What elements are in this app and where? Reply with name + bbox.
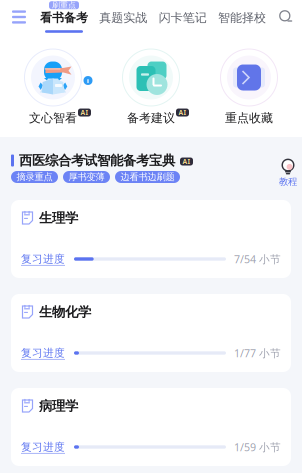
button[interactable]: 病理学 xyxy=(11,388,291,466)
staticText: 复习进度 xyxy=(21,346,65,359)
button[interactable]: Menu xyxy=(6,4,32,30)
staticText: 边看书边刷题 xyxy=(120,171,174,183)
staticText: 教程 xyxy=(279,176,297,187)
staticText: 复习进度 xyxy=(21,252,65,265)
staticText: 看书备考 xyxy=(40,10,88,25)
staticText: 生物化学 xyxy=(39,304,91,320)
staticText: 生理学 xyxy=(39,210,78,226)
button[interactable]: 智能择校 xyxy=(218,1,266,33)
staticText: 真题实战 xyxy=(99,10,147,25)
button[interactable]: Search xyxy=(276,7,296,27)
staticText: 文心智看 xyxy=(29,111,77,125)
staticText: 1/59 小节 xyxy=(234,440,281,454)
staticText: 厚书变薄 xyxy=(68,171,104,183)
staticText: 复习进度 xyxy=(21,440,65,453)
button[interactable]: 生理学 xyxy=(11,200,291,278)
staticText: 闪卡笔记 xyxy=(159,10,207,25)
staticText: 7/54 小节 xyxy=(234,252,281,266)
button[interactable]: 重点收藏 xyxy=(218,46,280,124)
staticText: 西医综合考试智能备考宝典 xyxy=(19,152,175,169)
staticText: 备考建议 xyxy=(127,111,175,125)
staticText: 刷重点 xyxy=(52,0,76,10)
staticText: AI xyxy=(80,108,88,117)
button[interactable]: 刷重点 xyxy=(40,1,88,33)
button[interactable]: 文心智看 xyxy=(22,46,84,124)
button[interactable]: 生物化学 xyxy=(11,294,291,372)
button[interactable]: 闪卡笔记 xyxy=(159,1,207,33)
button[interactable]: 教程 xyxy=(278,153,296,182)
staticText: AI xyxy=(178,108,186,117)
staticText: 智能择校 xyxy=(218,10,266,25)
staticText: 1/77 小节 xyxy=(234,346,281,360)
staticText: 摘录重点 xyxy=(16,171,52,183)
staticText: 病理学 xyxy=(39,398,78,414)
button[interactable]: 真题实战 xyxy=(99,1,147,33)
staticText: 重点收藏 xyxy=(225,111,273,125)
button[interactable]: 备考建议 xyxy=(120,46,182,124)
staticText: AI xyxy=(182,157,190,166)
